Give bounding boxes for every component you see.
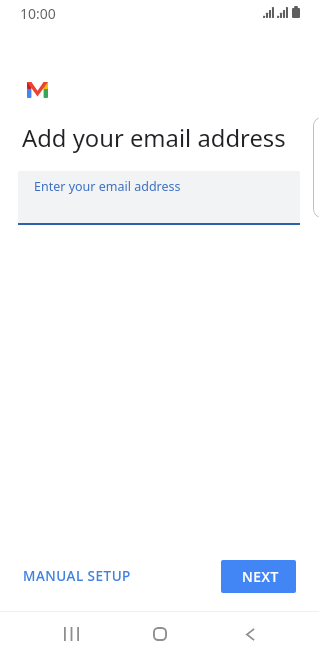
- staticText: MANUAL SETUP: [23, 567, 131, 585]
- button[interactable]: Home: [136, 622, 184, 646]
- button[interactable]: MANUAL SETUP: [17, 562, 137, 590]
- staticText: Enter your email address: [34, 178, 181, 195]
- staticText: 10:00: [20, 4, 56, 23]
- button[interactable]: Enter your email address: [18, 171, 300, 223]
- staticText: NEXT: [242, 567, 279, 586]
- staticText: Add your email address: [22, 122, 286, 154]
- button[interactable]: Back: [226, 622, 274, 646]
- button[interactable]: NEXT: [221, 560, 296, 593]
- button[interactable]: Recent apps: [47, 622, 95, 646]
